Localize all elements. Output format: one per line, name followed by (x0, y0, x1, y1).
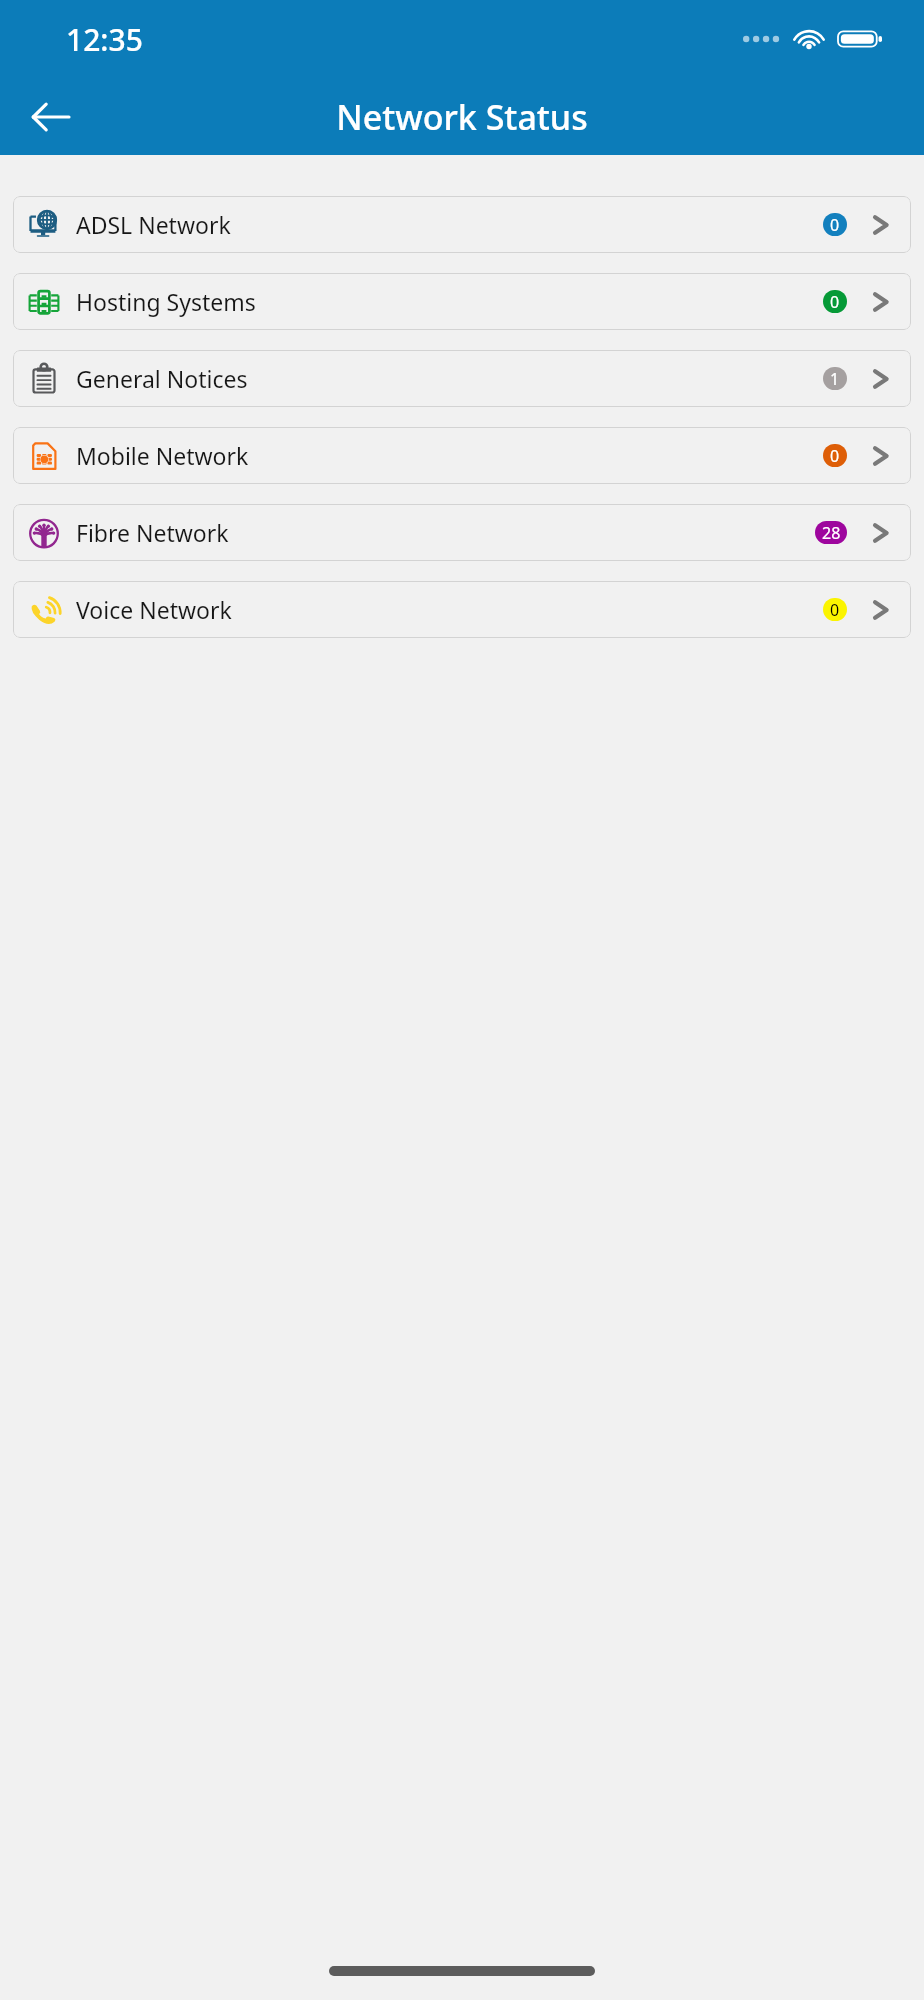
staticText: Hosting Systems (76, 286, 256, 317)
staticText: Network Status (336, 94, 588, 140)
button[interactable]: Mobile Network (13, 427, 911, 484)
button[interactable]: General Notices (13, 350, 911, 407)
staticText: General Notices (76, 363, 248, 394)
button[interactable]: Hosting Systems (13, 273, 911, 330)
staticText: 0 (830, 214, 840, 236)
button[interactable]: Back (18, 85, 82, 149)
staticText: 1 (830, 368, 840, 390)
button[interactable]: Voice Network (13, 581, 911, 638)
staticText: 12:35 (66, 19, 143, 60)
staticText: ADSL Network (76, 209, 231, 240)
staticText: Voice Network (76, 594, 232, 625)
staticText: 0 (830, 599, 840, 621)
staticText: 0 (830, 291, 840, 313)
staticText: 0 (830, 445, 840, 467)
button[interactable]: Fibre Network (13, 504, 911, 561)
staticText: 28 (822, 522, 841, 544)
staticText: Mobile Network (76, 440, 249, 471)
button[interactable]: ADSL Network (13, 196, 911, 253)
staticText: Fibre Network (76, 517, 229, 548)
